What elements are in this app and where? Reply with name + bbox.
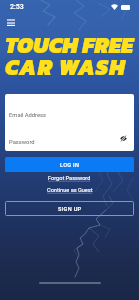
- staticText: Password: [9, 139, 35, 146]
- staticText: CAR WASH: [5, 51, 127, 84]
- button[interactable]: SIGN UP: [5, 201, 134, 216]
- staticText: Continue as Guest: [47, 187, 93, 194]
- button[interactable]: Password: [5, 124, 134, 151]
- staticText: Forgot Password: [48, 175, 91, 182]
- button[interactable]: Forgot Password: [0, 173, 139, 184]
- button[interactable]: LOG IN: [5, 157, 134, 172]
- staticText: TOUCH FREE: [5, 29, 134, 62]
- staticText: 2:53: [10, 3, 24, 11]
- button[interactable]: Show password: [117, 132, 129, 144]
- staticText: SIGN UP: [58, 206, 82, 213]
- button[interactable]: Email Address: [5, 94, 134, 124]
- button[interactable]: Continue as Guest: [0, 185, 139, 196]
- staticText: Email Address: [9, 112, 47, 119]
- staticText: LOG IN: [60, 162, 80, 169]
- button[interactable]: Open navigation menu: [3, 15, 19, 31]
